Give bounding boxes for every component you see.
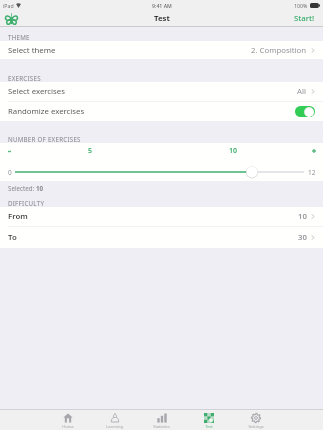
staticText: 10 <box>36 184 44 192</box>
staticText: 10 <box>298 211 307 222</box>
staticText: Test <box>205 424 213 429</box>
button[interactable]: Decrease <box>5 147 13 155</box>
button[interactable]: Select theme <box>0 41 323 59</box>
button[interactable]: 10 <box>226 146 240 156</box>
staticText: Start! <box>294 13 315 24</box>
staticText: 10 <box>229 146 238 156</box>
button[interactable]: Randomize exercises toggle <box>295 106 315 117</box>
button[interactable]: Statistics <box>138 410 185 430</box>
button[interactable]: 5 <box>84 146 96 156</box>
button[interactable]: Increase <box>310 147 318 155</box>
staticText: 0 <box>8 168 12 177</box>
staticText: Randomize exercises <box>8 106 85 117</box>
staticText: EXERCISES <box>8 74 41 82</box>
button[interactable]: Home <box>44 410 91 430</box>
staticText: Selected: <box>8 184 36 192</box>
button[interactable]: Test <box>185 410 232 430</box>
staticText: 5 <box>88 146 93 156</box>
staticText: Test <box>154 13 170 24</box>
staticText: Select exercises <box>8 86 65 97</box>
staticText: 12 <box>308 168 316 177</box>
staticText: Learning <box>106 424 123 429</box>
button[interactable]: Select exercises <box>0 82 323 102</box>
staticText: iPad <box>3 2 14 9</box>
staticText: Select theme <box>8 45 56 56</box>
button[interactable]: Randomize exercises <box>0 102 323 121</box>
staticText: 30 <box>298 232 307 243</box>
staticText: DIFFICULTY <box>8 199 45 207</box>
staticText: THEME <box>8 33 30 41</box>
staticText: To <box>8 232 17 243</box>
staticText: 100% <box>294 2 308 9</box>
staticText: Home <box>62 424 74 429</box>
staticText: Settings <box>248 424 264 429</box>
button[interactable]: Settings <box>232 410 279 430</box>
staticText: 2. Composition <box>251 45 307 56</box>
staticText: All <box>297 86 307 97</box>
button[interactable]: Logo <box>4 12 18 26</box>
button[interactable]: From <box>0 207 323 227</box>
staticText: 9:41 AM <box>152 2 172 9</box>
button[interactable]: Learning <box>91 410 138 430</box>
button[interactable]: Number of exercises slider <box>15 165 304 179</box>
button[interactable]: Start! <box>294 13 315 24</box>
button[interactable]: To <box>0 227 323 248</box>
staticText: Statistics <box>153 424 170 429</box>
staticText: NUMBER OF EXERCISES <box>8 135 81 143</box>
staticText: From <box>8 211 28 222</box>
